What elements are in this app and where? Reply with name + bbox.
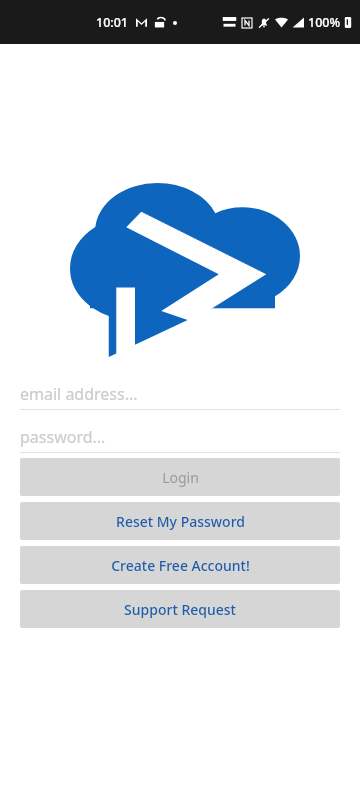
button[interactable]: password...: [20, 426, 340, 453]
staticText: 10:01: [96, 14, 129, 31]
staticText: Login: [162, 468, 199, 487]
staticText: Support Request: [124, 600, 236, 619]
staticText: Create Free Account!: [111, 556, 250, 575]
staticText: email address...: [20, 383, 138, 405]
button[interactable]: Support Request: [20, 590, 340, 628]
staticText: 100%: [308, 14, 341, 31]
button[interactable]: email address...: [20, 383, 340, 410]
button[interactable]: Login: [20, 458, 340, 496]
staticText: password...: [20, 426, 106, 448]
button[interactable]: Reset My Password: [20, 502, 340, 540]
button[interactable]: Create Free Account!: [20, 546, 340, 584]
staticText: Reset My Password: [116, 512, 245, 531]
